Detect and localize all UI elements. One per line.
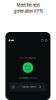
staticText: CONNECTED bbox=[19, 76, 37, 79]
staticText: Meet the next bbox=[16, 3, 39, 8]
button[interactable]: App logo bbox=[9, 39, 14, 41]
staticText: Fastest server bbox=[22, 85, 36, 88]
button[interactable]: Choose server bbox=[9, 82, 47, 91]
button[interactable]: Connect to VPN bbox=[23, 62, 33, 73]
button[interactable]: Settings bbox=[44, 39, 47, 41]
staticText: generation VPN bbox=[13, 9, 42, 14]
staticText: Not connected bbox=[19, 57, 36, 60]
button[interactable]: Help bbox=[41, 39, 44, 41]
